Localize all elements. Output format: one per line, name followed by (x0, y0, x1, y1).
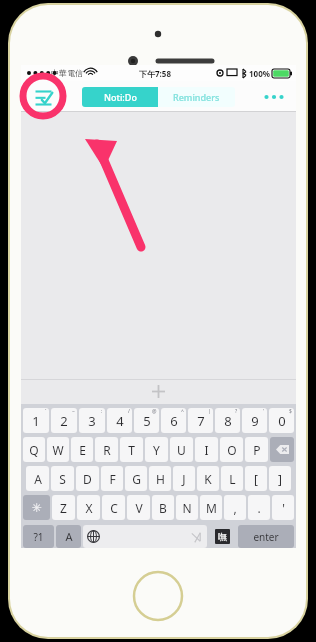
button[interactable]: Z (52, 495, 75, 520)
staticText: Q (29, 442, 39, 458)
staticText: ~ (72, 408, 75, 415)
staticText: I (204, 442, 209, 458)
button[interactable]: [ (245, 466, 267, 491)
staticText: 下午7:58 (139, 68, 171, 79)
staticText: 2 (60, 412, 68, 430)
staticText: [ (254, 471, 258, 487)
button[interactable]: J (173, 466, 195, 491)
button[interactable]: E (71, 437, 93, 462)
button[interactable]: enter (238, 525, 294, 548)
staticText: 3 (88, 412, 96, 430)
button[interactable]: 3 (79, 408, 105, 433)
button[interactable]: ' (272, 495, 294, 520)
button[interactable]: S (51, 466, 74, 491)
staticText: A (65, 529, 73, 544)
button[interactable]: 7 (188, 408, 213, 433)
button[interactable]: 0 (269, 408, 294, 433)
staticText: D (83, 471, 92, 487)
staticText: / (128, 408, 130, 415)
button[interactable]: Add task (21, 379, 296, 404)
staticText: Y (153, 442, 160, 458)
staticText: U (177, 442, 186, 458)
button[interactable]: C (102, 495, 125, 520)
button[interactable]: W (47, 437, 69, 462)
staticText: ] (278, 471, 282, 487)
button[interactable]: L (221, 466, 243, 491)
staticText: G (132, 471, 141, 487)
staticText: 0 (278, 412, 286, 430)
button[interactable]: G (125, 466, 147, 491)
button[interactable]: 8 (215, 408, 240, 433)
button[interactable]: ] (269, 466, 291, 491)
staticText: J (182, 471, 186, 487)
staticText: T (128, 442, 135, 458)
staticText: $ (289, 408, 292, 415)
button[interactable]: F (101, 466, 123, 491)
staticText: @ (152, 408, 157, 415)
staticText: ? (235, 408, 238, 415)
button[interactable]: U (170, 437, 193, 462)
staticText: V (135, 500, 143, 516)
button[interactable]: V (127, 495, 150, 520)
button[interactable]: 6 (161, 408, 186, 433)
staticText: 嘸 (218, 531, 227, 542)
button[interactable]: , (224, 495, 246, 520)
staticText: ' (263, 408, 265, 415)
staticText: 9 (251, 412, 259, 430)
staticText: | (208, 408, 211, 415)
button[interactable]: 5 (134, 408, 159, 433)
button[interactable]: Lists (29, 83, 57, 111)
button[interactable]: R (95, 437, 118, 462)
staticText: A (34, 471, 42, 487)
button[interactable]: More options (260, 83, 288, 111)
button[interactable]: T (120, 437, 143, 462)
staticText: M (206, 500, 217, 516)
button[interactable]: P (245, 437, 268, 462)
staticText: R (103, 442, 111, 458)
button[interactable]: H (149, 466, 171, 491)
button[interactable]: B (152, 495, 174, 520)
staticText: Z (60, 500, 67, 516)
button[interactable]: ✳ (23, 495, 50, 520)
staticText: , (233, 500, 237, 516)
button[interactable]: Reminders (158, 87, 235, 107)
button[interactable]: X (77, 495, 100, 520)
button[interactable]: Q (23, 437, 45, 462)
button[interactable]: M (200, 495, 222, 520)
staticText: enter (253, 530, 279, 544)
staticText: B (159, 500, 167, 516)
staticText: K (204, 471, 212, 487)
button[interactable]: I (195, 437, 218, 462)
staticText: 7 (197, 412, 205, 430)
button[interactable]: A (56, 525, 81, 548)
button[interactable]: Y (145, 437, 168, 462)
button[interactable]: N (176, 495, 198, 520)
button[interactable]: 2 (51, 408, 77, 433)
button[interactable]: D (76, 466, 99, 491)
staticText: E (79, 442, 86, 458)
button[interactable]: Space (83, 525, 207, 548)
staticText: Reminders (173, 91, 220, 103)
button[interactable]: 1 (23, 408, 49, 433)
staticText: . (257, 500, 261, 516)
staticText: 1 (32, 412, 40, 430)
button[interactable]: 9 (242, 408, 267, 433)
button[interactable]: . (248, 495, 270, 520)
staticText: F (109, 471, 116, 487)
staticText: X (85, 500, 93, 516)
staticText: P (253, 442, 261, 458)
staticText: H (156, 471, 165, 487)
staticText: 8 (224, 412, 232, 430)
button[interactable]: ?1 (23, 525, 54, 548)
button[interactable]: 嘸 (215, 529, 230, 544)
button[interactable]: Backspace (270, 437, 294, 462)
staticText: ?1 (33, 530, 44, 544)
staticText: Noti:Do (104, 91, 137, 103)
staticText: ^ (181, 408, 184, 415)
button[interactable]: Noti:Do (82, 87, 158, 107)
button[interactable]: 4 (107, 408, 132, 433)
button[interactable]: A (26, 466, 49, 491)
button[interactable]: O (220, 437, 243, 462)
staticText: C (110, 500, 118, 516)
button[interactable]: K (197, 466, 219, 491)
